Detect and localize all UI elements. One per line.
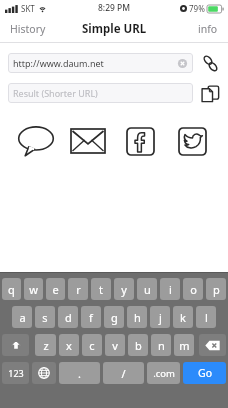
staticText: info xyxy=(198,22,218,36)
staticText: c xyxy=(89,338,95,353)
button[interactable]: w xyxy=(24,278,43,300)
button[interactable]: k xyxy=(173,306,193,328)
staticText: k xyxy=(180,310,186,325)
staticText: b xyxy=(135,338,142,353)
staticText: d xyxy=(65,310,72,325)
staticText: t xyxy=(99,282,103,297)
staticText: SKT xyxy=(21,3,35,14)
staticText: x xyxy=(66,338,72,353)
button[interactable]: n xyxy=(151,334,171,356)
button[interactable]: Copy result xyxy=(198,81,222,105)
staticText: q xyxy=(8,282,15,297)
button[interactable]: http://www.daum.net xyxy=(8,53,193,73)
button[interactable]: Clear text xyxy=(177,58,188,69)
button[interactable]: l xyxy=(196,306,216,328)
staticText: Go xyxy=(198,366,212,380)
staticText: a xyxy=(19,310,26,325)
button[interactable]: info xyxy=(188,18,228,40)
staticText: w xyxy=(29,282,38,297)
button[interactable]: b xyxy=(128,334,148,356)
button[interactable]: t xyxy=(91,278,111,300)
button[interactable]: q xyxy=(2,278,21,300)
button[interactable]: f xyxy=(81,306,101,328)
staticText: 123 xyxy=(8,367,24,379)
button[interactable]: / xyxy=(103,362,144,384)
staticText: History xyxy=(10,22,46,36)
button[interactable]: v xyxy=(105,334,125,356)
staticText: e xyxy=(52,282,59,297)
button[interactable]: Shorten link xyxy=(198,51,222,75)
button[interactable]: o xyxy=(183,278,203,300)
staticText: h xyxy=(134,310,141,325)
button[interactable]: Result (Shorter URL) xyxy=(8,83,193,103)
button[interactable]: c xyxy=(82,334,102,356)
button[interactable]: Go xyxy=(183,362,226,384)
button[interactable]: .com xyxy=(147,362,180,384)
button[interactable]: y xyxy=(114,278,134,300)
button[interactable]: r xyxy=(68,278,88,300)
staticText: http://www.daum.net xyxy=(13,57,177,69)
staticText: 8:29 PM xyxy=(98,2,131,14)
button[interactable]: u xyxy=(137,278,157,300)
staticText: . xyxy=(78,366,81,381)
staticText: Result (Shorter URL) xyxy=(13,87,98,99)
button[interactable]: a xyxy=(12,306,32,328)
button[interactable]: x xyxy=(59,334,79,356)
button[interactable]: Share via email xyxy=(62,119,114,163)
staticText: l xyxy=(205,310,208,325)
staticText: y xyxy=(121,282,127,297)
button[interactable]: z xyxy=(35,334,56,356)
staticText: p xyxy=(213,282,220,297)
button[interactable]: Share on Twitter xyxy=(166,119,218,163)
button[interactable]: Share on Facebook xyxy=(114,119,166,163)
button[interactable]: m xyxy=(174,334,194,356)
staticText: m xyxy=(179,338,190,353)
button[interactable]: Backspace xyxy=(199,334,226,356)
button[interactable]: h xyxy=(127,306,147,328)
button[interactable]: Change keyboard xyxy=(32,362,56,384)
staticText: .com xyxy=(153,367,175,380)
button[interactable]: p xyxy=(206,278,226,300)
staticText: v xyxy=(112,338,118,353)
button[interactable]: g xyxy=(104,306,124,328)
button[interactable]: e xyxy=(46,278,65,300)
staticText: r xyxy=(76,282,81,297)
staticText: f xyxy=(89,310,93,325)
staticText: s xyxy=(42,310,48,325)
staticText: n xyxy=(158,338,165,353)
button[interactable]: . xyxy=(59,362,100,384)
button[interactable]: j xyxy=(150,306,170,328)
button[interactable]: i xyxy=(160,278,180,300)
staticText: z xyxy=(43,338,49,353)
button[interactable]: History xyxy=(0,18,56,40)
staticText: / xyxy=(121,366,126,381)
button[interactable]: Shift xyxy=(2,334,29,356)
staticText: o xyxy=(190,282,197,297)
staticText: i xyxy=(169,282,172,297)
button[interactable]: 123 xyxy=(2,362,29,384)
staticText: Simple URL xyxy=(82,21,147,37)
button[interactable]: Share via message xyxy=(10,119,62,163)
staticText: j xyxy=(159,310,162,325)
staticText: u xyxy=(144,282,151,297)
button[interactable]: d xyxy=(58,306,78,328)
staticText: 79% xyxy=(189,3,205,14)
button[interactable]: s xyxy=(35,306,55,328)
staticText: g xyxy=(111,310,118,325)
